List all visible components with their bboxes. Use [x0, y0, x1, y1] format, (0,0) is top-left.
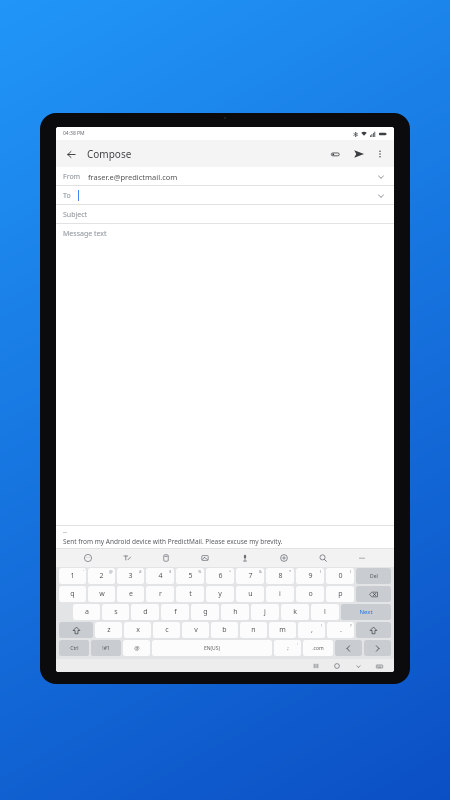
button[interactable]: 2	[88, 568, 115, 584]
button[interactable]: Expand	[375, 171, 387, 183]
button[interactable]: .com	[303, 640, 333, 656]
button[interactable]: Shift	[356, 622, 391, 638]
button[interactable]: Next	[341, 604, 391, 620]
button[interactable]: 1	[59, 568, 86, 584]
staticText: 3	[128, 571, 133, 581]
button[interactable]: Home	[332, 661, 342, 671]
button[interactable]: Recent apps	[311, 661, 321, 671]
button[interactable]: v	[182, 622, 209, 638]
staticText: @	[109, 569, 113, 574]
button[interactable]: x	[124, 622, 151, 638]
button[interactable]: Stickers	[198, 551, 212, 565]
staticText: t	[189, 589, 192, 599]
staticText: *	[289, 569, 292, 574]
staticText: m	[279, 625, 286, 635]
button[interactable]: b	[211, 622, 238, 638]
button[interactable]: Del	[356, 568, 391, 584]
button[interactable]: k	[281, 604, 309, 620]
staticText: 2	[99, 571, 104, 581]
button[interactable]: Previous	[335, 640, 362, 656]
button[interactable]: e	[117, 586, 144, 602]
staticText: 4	[158, 571, 163, 581]
button[interactable]: y	[206, 586, 234, 602]
button[interactable]: h	[221, 604, 249, 620]
button[interactable]: s	[102, 604, 129, 620]
button[interactable]: Clipboard	[159, 551, 173, 565]
button[interactable]: n	[240, 622, 267, 638]
button[interactable]: a	[73, 604, 100, 620]
button[interactable]: t	[176, 586, 204, 602]
staticText: 8	[278, 571, 283, 581]
button[interactable]: q	[59, 586, 86, 602]
staticText: u	[248, 589, 253, 599]
staticText: &	[259, 569, 262, 574]
button[interactable]: 0	[326, 568, 354, 584]
button[interactable]: !#1	[91, 640, 121, 656]
staticText: $	[169, 569, 172, 574]
button[interactable]: Subject	[56, 205, 394, 224]
button[interactable]: u	[236, 586, 264, 602]
staticText: ;	[287, 644, 289, 652]
button[interactable]: c	[153, 622, 180, 638]
button[interactable]: .	[327, 622, 354, 638]
staticText: Next	[359, 608, 373, 616]
button[interactable]: z	[95, 622, 122, 638]
button[interactable]: d	[131, 604, 159, 620]
staticText: Subject	[63, 210, 88, 220]
staticText: p	[338, 589, 343, 599]
staticText: Message text	[63, 229, 107, 239]
button[interactable]: Next field	[364, 640, 391, 656]
staticText: Ctrl	[70, 645, 79, 652]
button[interactable]: m	[269, 622, 296, 638]
staticText: l	[324, 607, 326, 617]
button[interactable]: 4	[146, 568, 174, 584]
button[interactable]: More options	[372, 146, 388, 162]
button[interactable]: g	[191, 604, 219, 620]
button[interactable]: 6	[206, 568, 234, 584]
button[interactable]: Hide keyboard	[353, 661, 363, 671]
button[interactable]: Handwriting	[120, 551, 134, 565]
button[interactable]: Voice input	[238, 551, 252, 565]
button[interactable]: 8	[266, 568, 294, 584]
staticText: q	[70, 589, 75, 599]
button[interactable]: Ctrl	[59, 640, 89, 656]
button[interactable]: 7	[236, 568, 264, 584]
button[interactable]: l	[311, 604, 339, 620]
staticText: From	[63, 172, 81, 182]
staticText: !#1	[102, 645, 110, 652]
button[interactable]: More	[355, 551, 369, 565]
button[interactable]: @	[123, 640, 150, 656]
staticText: s	[114, 607, 118, 617]
button[interactable]: i	[266, 586, 294, 602]
button[interactable]: o	[296, 586, 324, 602]
staticText: o	[308, 589, 313, 599]
button[interactable]: Send	[350, 145, 368, 163]
button[interactable]: Shift	[59, 622, 93, 638]
staticText: n	[251, 625, 256, 635]
staticText: 9	[308, 571, 313, 581]
button[interactable]: ,	[298, 622, 325, 638]
button[interactable]: Back	[62, 145, 80, 163]
button[interactable]: Search	[316, 551, 330, 565]
button[interactable]: Switch keyboard	[374, 661, 384, 671]
button[interactable]: 5	[176, 568, 204, 584]
button[interactable]: w	[88, 586, 115, 602]
staticText: g	[203, 607, 208, 617]
button[interactable]: r	[146, 586, 174, 602]
button[interactable]: EN(US)	[152, 640, 272, 656]
button[interactable]: ;	[274, 640, 301, 656]
button[interactable]: Settings	[277, 551, 291, 565]
button[interactable]: 9	[296, 568, 324, 584]
button[interactable]: To	[56, 186, 394, 205]
button[interactable]: j	[251, 604, 279, 620]
button[interactable]: Backspace	[356, 586, 391, 602]
button[interactable]: f	[161, 604, 189, 620]
button[interactable]: Attach file	[326, 145, 344, 163]
staticText: i	[279, 589, 281, 599]
button[interactable]: Expand	[375, 190, 387, 202]
button[interactable]: 3	[117, 568, 144, 584]
button[interactable]: p	[326, 586, 354, 602]
button[interactable]: From	[56, 167, 394, 186]
button[interactable]: Emoji	[81, 551, 95, 565]
staticText: ^	[229, 569, 232, 574]
